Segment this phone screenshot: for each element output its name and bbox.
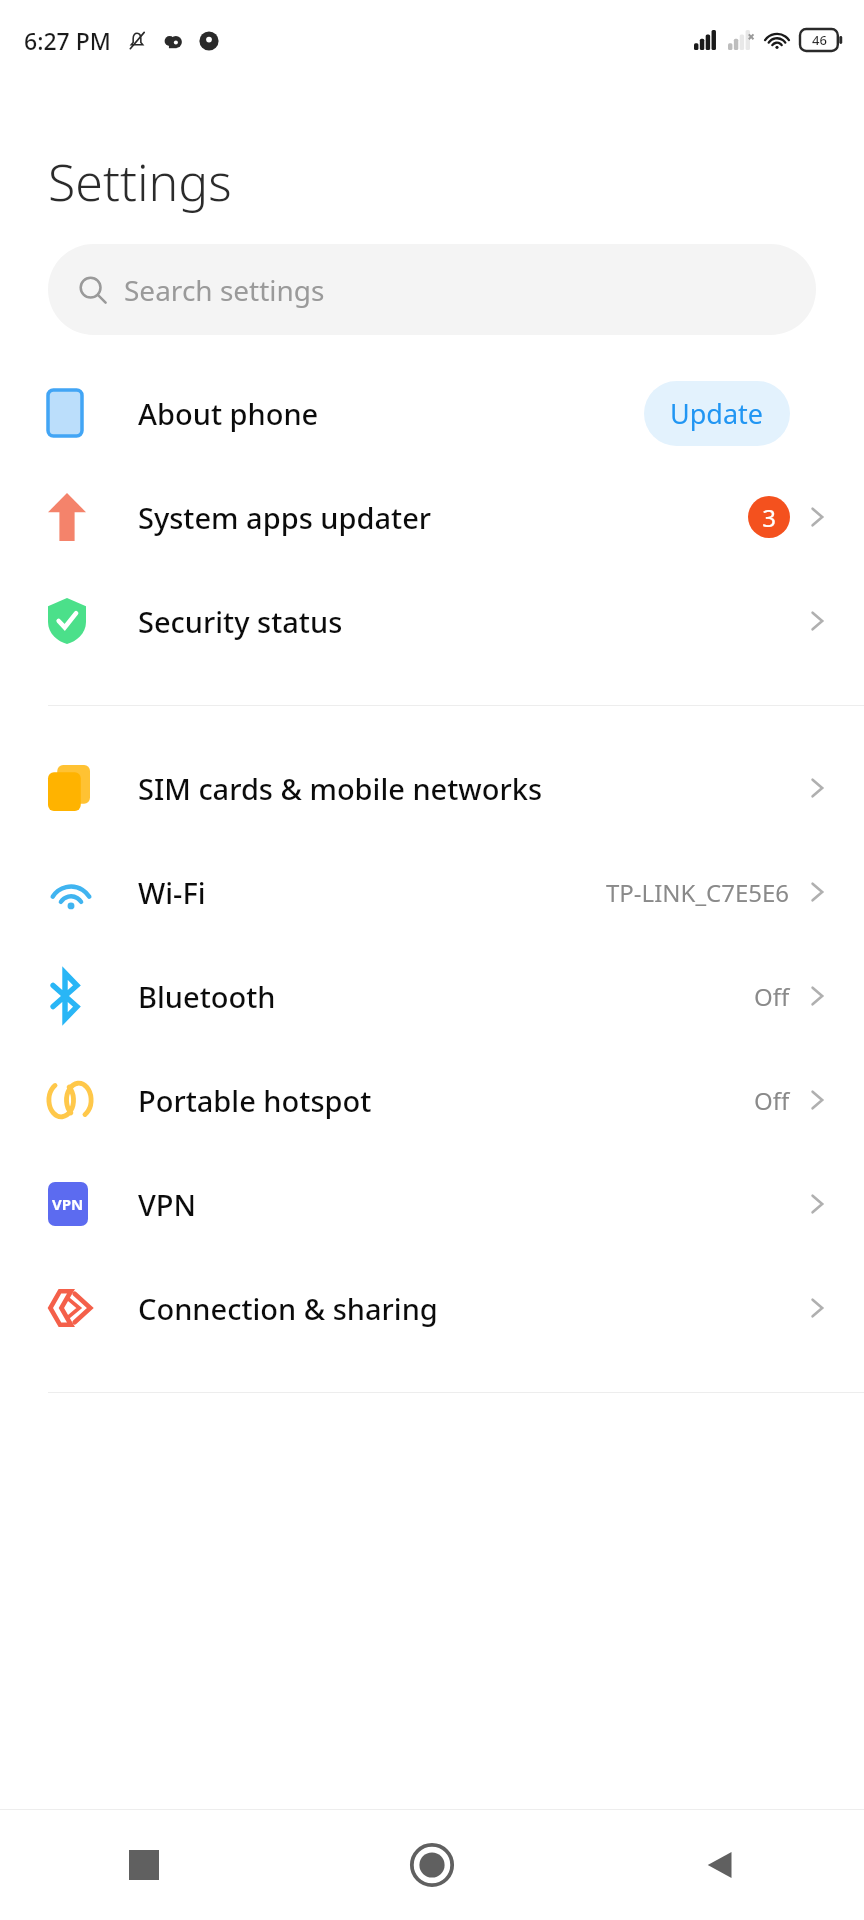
button[interactable]: Back bbox=[576, 1810, 864, 1920]
button[interactable]: Home bbox=[288, 1810, 576, 1920]
staticText: Update bbox=[670, 395, 764, 432]
button[interactable]: Search settings bbox=[48, 244, 816, 335]
staticText: 3 bbox=[762, 501, 776, 534]
staticText: Off bbox=[754, 1084, 790, 1117]
button[interactable]: System apps updater bbox=[0, 465, 864, 569]
button[interactable]: VPN bbox=[0, 1152, 864, 1256]
other: About phone bbox=[48, 390, 82, 436]
staticText: About phone bbox=[138, 394, 319, 433]
staticText: Bluetooth bbox=[138, 977, 276, 1016]
button[interactable]: SIM cards & mobile networks bbox=[0, 736, 864, 840]
button[interactable]: Connection & sharing bbox=[0, 1256, 864, 1360]
staticText: VPN bbox=[138, 1185, 197, 1224]
staticText: Connection & sharing bbox=[138, 1289, 438, 1328]
staticText: System apps updater bbox=[138, 498, 432, 537]
staticText: Settings bbox=[48, 148, 232, 216]
staticText: 46 bbox=[812, 31, 827, 49]
button[interactable]: Portable hotspot bbox=[0, 1048, 864, 1152]
staticText: Off bbox=[754, 980, 790, 1013]
button[interactable]: Bluetooth bbox=[0, 944, 864, 1048]
staticText: SIM cards & mobile networks bbox=[138, 769, 543, 808]
button[interactable]: Security status bbox=[0, 569, 864, 673]
staticText: Search settings bbox=[124, 271, 325, 309]
button[interactable]: Update bbox=[644, 381, 790, 446]
staticText: VPN bbox=[52, 1194, 84, 1214]
staticText: Portable hotspot bbox=[138, 1081, 372, 1120]
button[interactable]: Wi-Fi bbox=[0, 840, 864, 944]
staticText: Wi-Fi bbox=[138, 873, 206, 912]
staticText: TP-LINK_C7E5E6 bbox=[606, 876, 790, 909]
staticText: 6:27 PM bbox=[24, 25, 111, 56]
button[interactable]: Recent apps bbox=[0, 1810, 288, 1920]
staticText: Security status bbox=[138, 602, 343, 641]
button[interactable]: About phone bbox=[0, 361, 864, 465]
